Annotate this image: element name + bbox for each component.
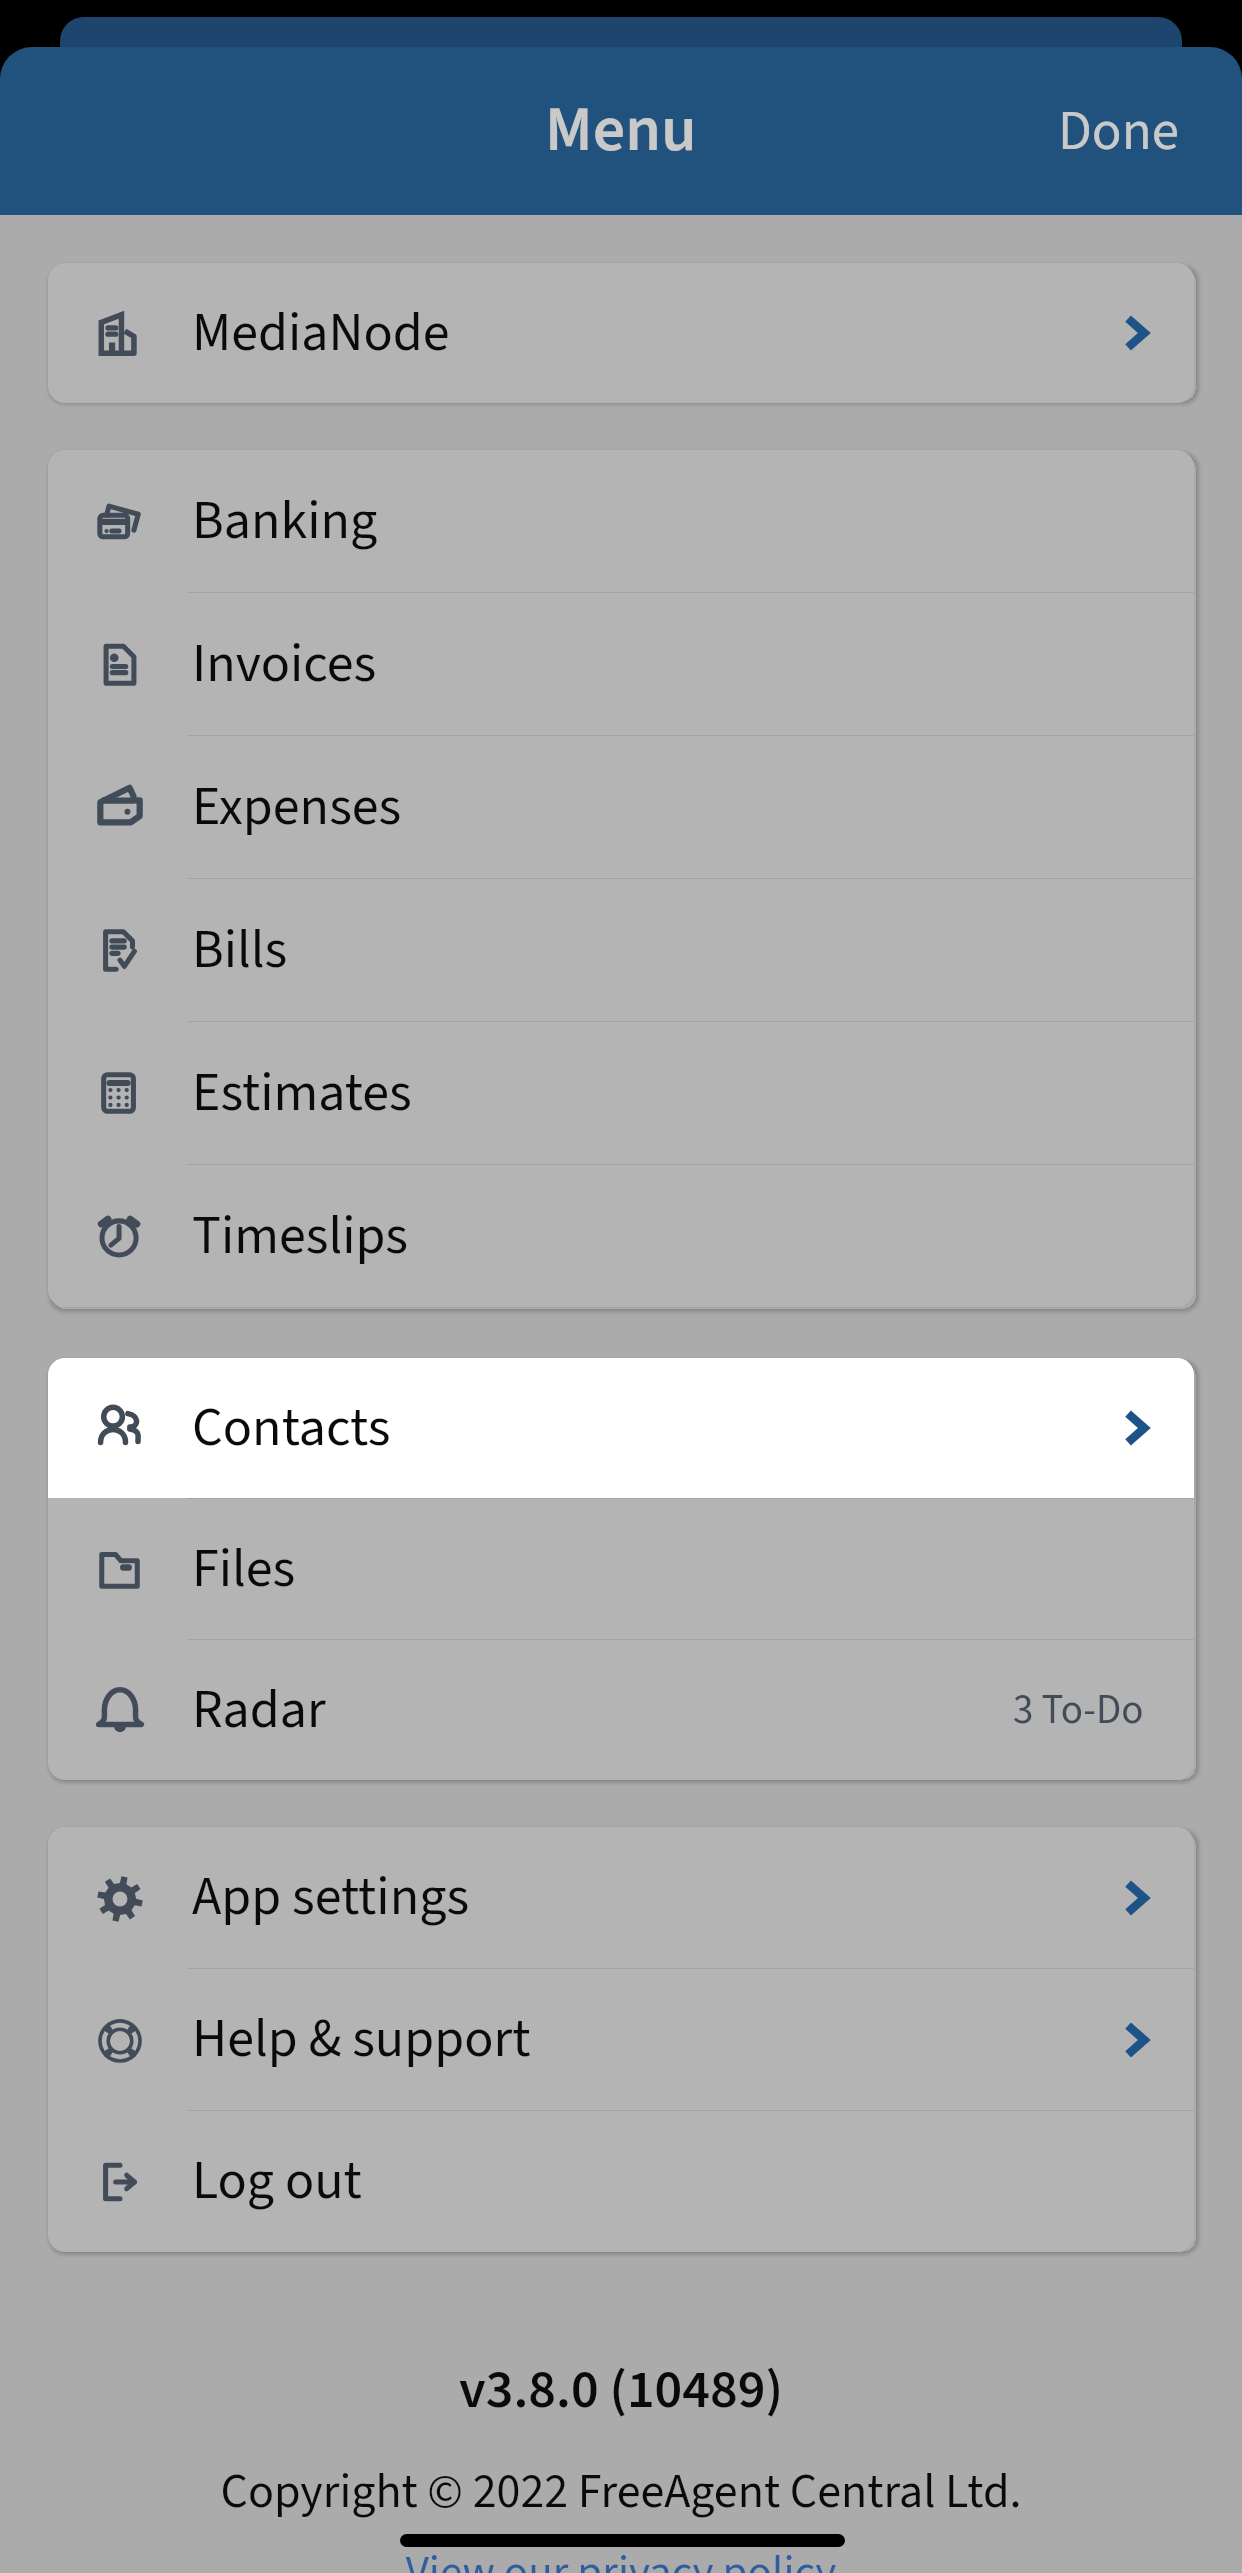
button[interactable]: Radar xyxy=(48,1640,1194,1780)
staticText: Copyright © 2022 FreeAgent Central Ltd. xyxy=(0,2458,1242,2526)
staticText: Invoices xyxy=(192,626,377,703)
button[interactable]: MediaNode xyxy=(48,263,1194,403)
staticText: Log out xyxy=(192,2143,362,2220)
staticText: Timeslips xyxy=(192,1198,408,1275)
button[interactable]: Files xyxy=(48,1499,1194,1639)
staticText: Contacts xyxy=(192,1390,391,1467)
staticText: Banking xyxy=(192,483,378,560)
button[interactable]: Contacts xyxy=(48,1358,1194,1498)
staticText: Radar xyxy=(192,1672,326,1749)
staticText: Files xyxy=(192,1531,296,1608)
button[interactable]: Done xyxy=(1028,85,1242,189)
button[interactable]: Log out xyxy=(48,2111,1194,2252)
button[interactable]: Help & support xyxy=(48,1969,1194,2110)
staticText: Estimates xyxy=(192,1055,412,1132)
staticText: 3 To-Do xyxy=(1013,1681,1144,1739)
staticText: Bills xyxy=(192,912,288,989)
button[interactable]: Estimates xyxy=(48,1022,1194,1164)
button[interactable]: Timeslips xyxy=(48,1165,1194,1307)
staticText: Help & support xyxy=(192,2001,531,2078)
button[interactable]: Invoices xyxy=(48,593,1194,735)
staticText: Menu xyxy=(545,84,697,175)
staticText: Done xyxy=(1058,93,1180,171)
staticText: App settings xyxy=(192,1859,470,1936)
staticText: MediaNode xyxy=(192,295,450,372)
button[interactable]: View our privacy policy xyxy=(0,2541,1242,2573)
staticText: Expenses xyxy=(192,769,402,846)
button[interactable]: Expenses xyxy=(48,736,1194,878)
button[interactable]: Bills xyxy=(48,879,1194,1021)
button[interactable]: App settings xyxy=(48,1827,1194,1968)
staticText: v3.8.0 (10489) xyxy=(0,2352,1242,2429)
button[interactable]: Banking xyxy=(48,450,1194,592)
